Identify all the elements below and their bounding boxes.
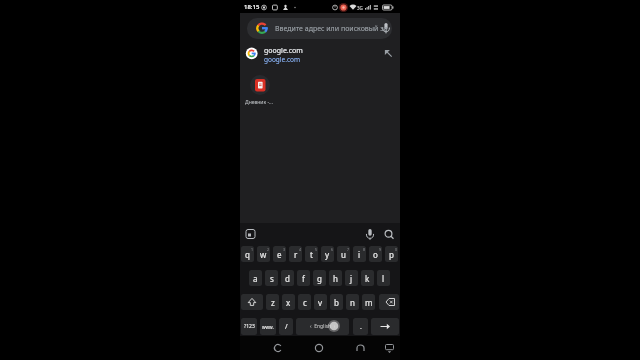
staticText: b: [334, 297, 339, 308]
button[interactable]: k: [361, 270, 374, 286]
button[interactable]: y: [321, 246, 334, 262]
button[interactable]: a: [249, 270, 262, 286]
button[interactable]: s: [265, 270, 278, 286]
button[interactable]: [384, 340, 398, 354]
staticText: 18:15: [244, 3, 260, 11]
button[interactable]: q: [241, 246, 254, 262]
staticText: x: [286, 297, 291, 308]
button[interactable]: o: [369, 246, 382, 262]
button[interactable]: v: [314, 294, 327, 310]
staticText: s: [270, 273, 274, 284]
staticText: www.: [262, 324, 274, 330]
button[interactable]: n: [346, 294, 359, 310]
staticText: google.com: [264, 46, 303, 56]
button[interactable]: z: [266, 294, 279, 310]
staticText: d: [285, 273, 290, 284]
staticText: ‹ English ›: [310, 323, 336, 330]
button[interactable]: d: [281, 270, 294, 286]
staticText: o: [373, 249, 378, 260]
button[interactable]: r: [289, 246, 302, 262]
button[interactable]: Дневник -...: [244, 72, 292, 108]
staticText: m: [365, 297, 373, 308]
staticText: 2: [267, 247, 270, 252]
staticText: google.com: [264, 55, 301, 64]
button[interactable]: [361, 228, 375, 242]
button[interactable]: i: [353, 246, 366, 262]
button[interactable]: [371, 318, 399, 335]
button[interactable]: [241, 294, 263, 310]
staticText: 8: [363, 247, 366, 252]
button[interactable]: [311, 340, 327, 356]
button[interactable]: [270, 340, 286, 356]
staticText: 4: [299, 247, 302, 252]
staticText: a: [253, 273, 258, 284]
staticText: l: [382, 273, 385, 284]
button[interactable]: p: [385, 246, 398, 262]
button[interactable]: ‹ English ›: [296, 318, 349, 335]
button[interactable]: c: [298, 294, 311, 310]
button[interactable]: m: [362, 294, 375, 310]
button[interactable]: /: [279, 318, 293, 335]
staticText: u: [341, 249, 346, 260]
button[interactable]: f: [297, 270, 310, 286]
button[interactable]: Введите адрес или поисковый за: [247, 18, 392, 39]
button[interactable]: [382, 228, 396, 242]
button[interactable]: [243, 229, 255, 241]
staticText: w: [260, 249, 267, 260]
staticText: i: [358, 249, 361, 260]
staticText: 0: [395, 247, 398, 252]
staticText: g: [317, 273, 322, 284]
staticText: 9: [379, 247, 382, 252]
staticText: .: [360, 322, 362, 332]
staticText: Дневник -...: [245, 99, 274, 106]
staticText: 1: [251, 247, 254, 252]
staticText: c: [303, 297, 307, 308]
button[interactable]: b: [330, 294, 343, 310]
button[interactable]: w: [257, 246, 270, 262]
button[interactable]: x: [282, 294, 295, 310]
staticText: 7: [347, 247, 350, 252]
staticText: 5: [315, 247, 318, 252]
button[interactable]: h: [329, 270, 342, 286]
staticText: /: [285, 322, 288, 332]
staticText: f: [302, 273, 305, 284]
staticText: y: [325, 249, 330, 260]
button[interactable]: www.: [260, 318, 276, 335]
button[interactable]: l: [377, 270, 390, 286]
staticText: v: [318, 297, 323, 308]
button[interactable]: .: [353, 318, 368, 335]
staticText: e: [277, 249, 282, 260]
staticText: t: [310, 249, 313, 260]
staticText: k: [365, 273, 370, 284]
staticText: 3G: [357, 5, 363, 11]
staticText: r: [294, 249, 298, 260]
staticText: p: [389, 249, 394, 260]
button[interactable]: e: [273, 246, 286, 262]
button[interactable]: ?123: [241, 318, 257, 335]
staticText: q: [245, 249, 250, 260]
staticText: Введите адрес или поисковый за: [275, 24, 388, 34]
staticText: h: [333, 273, 338, 284]
button[interactable]: g: [313, 270, 326, 286]
staticText: z: [271, 297, 275, 308]
button[interactable]: u: [337, 246, 350, 262]
staticText: 3: [283, 247, 286, 252]
button[interactable]: [379, 294, 399, 310]
staticText: n: [350, 297, 355, 308]
staticText: ?123: [244, 323, 255, 330]
staticText: j: [350, 273, 353, 284]
button[interactable]: t: [305, 246, 318, 262]
button[interactable]: google.com: [240, 44, 400, 70]
button[interactable]: [352, 340, 368, 356]
staticText: 6: [331, 247, 334, 252]
button[interactable]: j: [345, 270, 358, 286]
